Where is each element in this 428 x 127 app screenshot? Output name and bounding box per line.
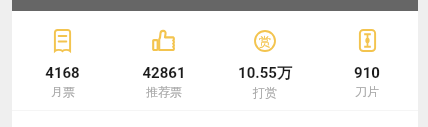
staticText: 4168 [45,64,80,82]
staticText: 赏 [259,34,271,49]
other: 刀片 [358,29,377,52]
staticText: 10.55万 [238,64,292,83]
staticText: 910 [354,64,380,82]
other: 月票 [53,29,72,52]
staticText: 42861 [142,64,186,82]
staticText: 月票 [51,84,75,99]
other: 推荐票 [152,30,176,51]
button[interactable]: 推荐票 [113,11,214,99]
button[interactable]: 打赏 [214,11,316,100]
staticText: 刀片 [355,84,379,99]
button[interactable]: 刀片 [316,11,418,99]
button[interactable]: 月票 [12,11,113,99]
staticText: 推荐票 [146,84,182,99]
other: 打赏 [254,30,276,52]
staticText: 打赏 [253,85,277,100]
